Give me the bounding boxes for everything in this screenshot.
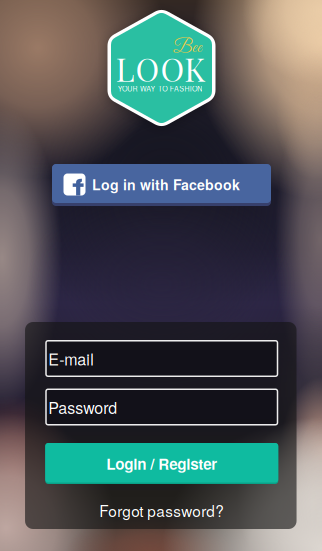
staticText: Log in with Facebook [92, 174, 240, 195]
button[interactable]: E-mail [45, 340, 278, 377]
staticText: E-mail [48, 347, 94, 370]
staticText: Forgot password? [99, 499, 224, 521]
button[interactable]: Password [45, 388, 278, 425]
staticText: YOUR WAY TO FASHION [118, 83, 202, 93]
staticText: Login / Register [106, 453, 217, 474]
staticText: Password [48, 395, 117, 418]
staticText: LOOK [116, 47, 205, 90]
button[interactable]: Forgot password? [99, 499, 224, 521]
staticText: Bee [173, 37, 202, 59]
button[interactable]: Log in with Facebook [52, 164, 271, 206]
button[interactable]: Login / Register [45, 443, 278, 484]
